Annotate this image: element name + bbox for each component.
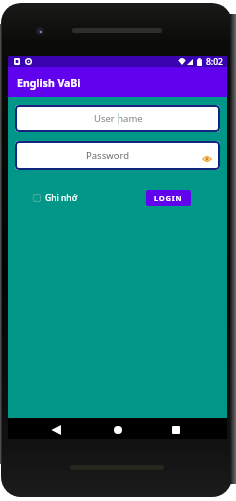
staticText: Ghi nhớ: [45, 192, 78, 204]
staticText: LOGIN: [154, 193, 183, 203]
button[interactable]: Recent apps: [166, 420, 186, 440]
staticText: User name: [94, 112, 143, 125]
staticText: 8:02: [206, 56, 223, 67]
button[interactable]: Ghi nhớ: [33, 192, 78, 204]
button[interactable]: Show password: [201, 153, 213, 165]
button[interactable]: Password: [15, 141, 220, 170]
staticText: English VaBi: [17, 76, 81, 90]
button[interactable]: Home: [108, 420, 128, 440]
button[interactable]: Back: [46, 420, 66, 440]
button[interactable]: User name: [15, 105, 220, 132]
staticText: Password: [86, 149, 129, 162]
button[interactable]: LOGIN: [146, 190, 191, 206]
